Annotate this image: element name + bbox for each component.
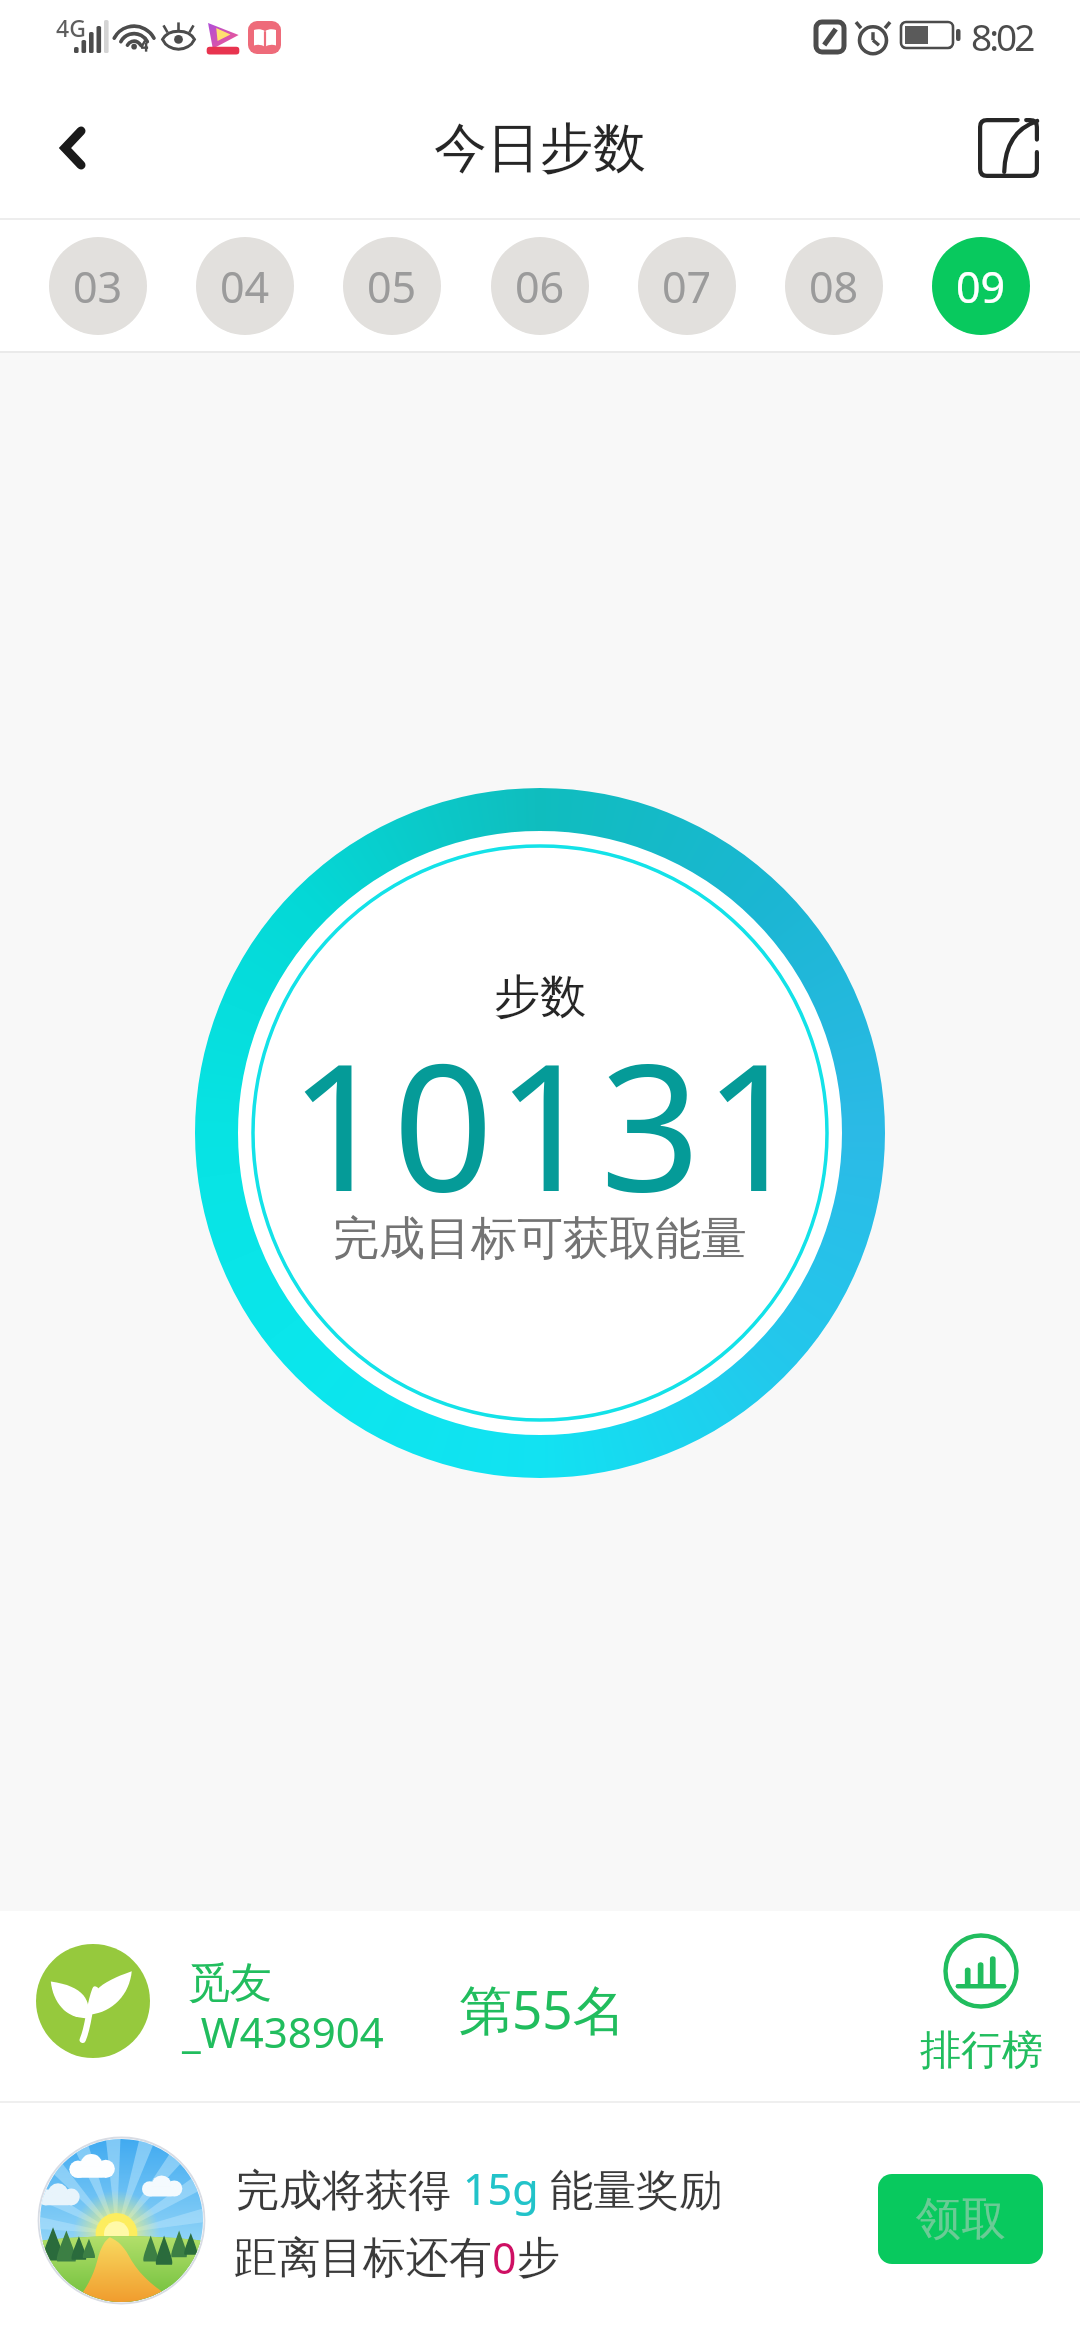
staticText: 完成目标可获取能量: [333, 1210, 747, 1268]
staticText: 能量奖励: [539, 2159, 723, 2218]
staticText: 09: [956, 257, 1006, 316]
staticText: 排行榜: [920, 2025, 1043, 2077]
staticText: 15g: [463, 2159, 539, 2218]
staticText: 06: [515, 257, 565, 316]
staticText: 10131: [289, 1003, 808, 1243]
staticText: 05: [367, 257, 417, 316]
button[interactable]: Share: [936, 84, 1080, 212]
button[interactable]: 03: [49, 237, 147, 335]
staticText: 步数: [494, 968, 586, 1026]
staticText: 8:02: [971, 11, 1033, 61]
staticText: 领取: [916, 2191, 1006, 2248]
button[interactable]: 06: [491, 237, 589, 335]
button[interactable]: 09: [932, 237, 1030, 335]
button[interactable]: 07: [638, 237, 736, 335]
button[interactable]: 排行榜 Leaderboard: [905, 1933, 1057, 2077]
staticText: 4G: [56, 12, 86, 43]
staticText: 07: [662, 257, 712, 316]
staticText: 完成将获得: [236, 2159, 463, 2218]
staticText: _W438904: [182, 2003, 384, 2060]
staticText: 04: [220, 257, 270, 316]
button[interactable]: 领取: [878, 2174, 1043, 2264]
button[interactable]: 04: [196, 237, 294, 335]
staticText: 08: [809, 257, 859, 316]
button[interactable]: 觅友: [0, 1911, 1080, 2101]
staticText: 距离目标还有: [234, 2231, 492, 2285]
staticText: 第55名: [459, 1972, 626, 2044]
staticText: 步: [517, 2231, 560, 2285]
staticText: 觅友: [188, 1957, 272, 2010]
button[interactable]: 08: [785, 237, 883, 335]
button[interactable]: Back: [0, 84, 146, 212]
staticText: 03: [73, 257, 123, 316]
staticText: 0: [492, 2228, 517, 2287]
staticText: 今日步数: [434, 115, 646, 182]
button[interactable]: 05: [343, 237, 441, 335]
